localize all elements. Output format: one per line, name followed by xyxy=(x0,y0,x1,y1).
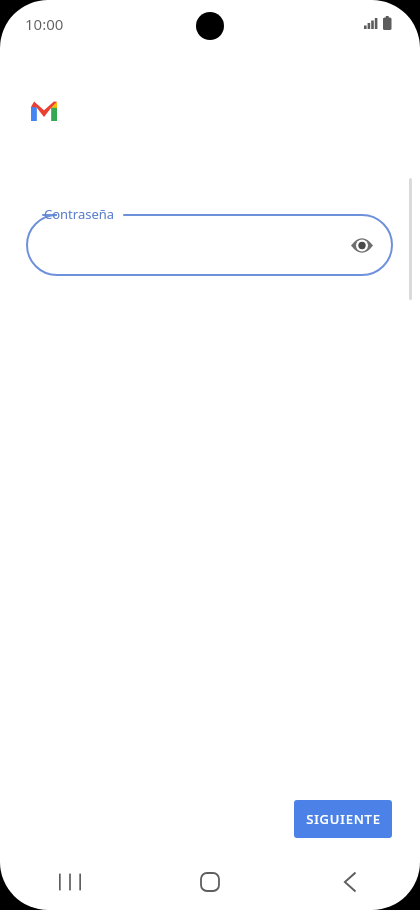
button[interactable]: Mostrar contraseña xyxy=(26,214,393,276)
button[interactable]: SIGUIENTE xyxy=(294,800,392,838)
button[interactable]: Recientes xyxy=(0,854,140,910)
staticText: 10:00 xyxy=(25,14,64,34)
button[interactable]: Mostrar contraseña xyxy=(345,228,379,262)
staticText: SIGUIENTE xyxy=(306,810,381,828)
button[interactable]: Atrás xyxy=(280,854,420,910)
button[interactable]: Inicio xyxy=(140,854,280,910)
staticText: Contraseña xyxy=(44,205,115,223)
